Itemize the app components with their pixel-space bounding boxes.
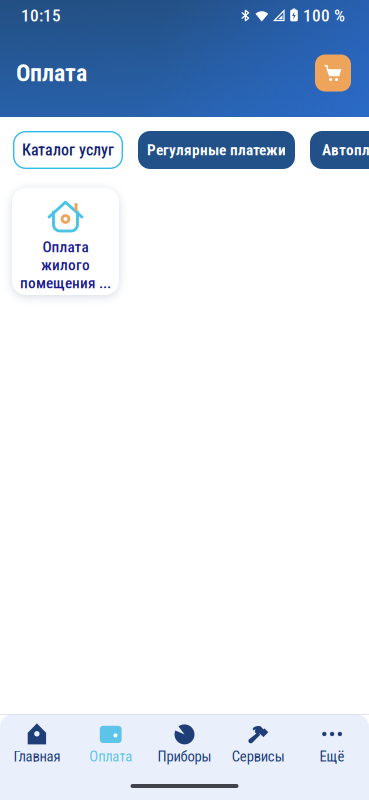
button[interactable]: Главная [0,713,74,765]
staticText: Оплата [16,59,87,87]
staticText: Главная [13,748,60,765]
button[interactable]: Приборы [148,713,221,765]
button[interactable]: Каталог услуг [13,131,123,169]
button[interactable]: Корзина [315,54,351,91]
staticText: Сервисы [232,748,285,765]
staticText: 10:15 [21,5,61,26]
button[interactable]: Ещё [295,713,369,765]
staticText: жилого [41,256,90,274]
button[interactable]: Сервисы [221,713,295,765]
staticText: Регулярные платежи [147,141,286,159]
staticText: Ещё [320,748,345,765]
button[interactable]: Регулярные платежи [138,131,295,169]
button[interactable]: Автоплатежи [310,131,369,169]
staticText: помещения ... [20,274,111,292]
staticText: Автоплатежи [322,141,369,159]
staticText: Каталог услуг [22,141,114,159]
staticText: Оплата [42,238,88,256]
button[interactable]: Оплата [12,188,119,295]
staticText: Оплата [89,748,132,765]
staticText: 100 % [303,5,345,26]
staticText: Приборы [157,748,211,765]
button[interactable]: Оплата [74,713,148,765]
